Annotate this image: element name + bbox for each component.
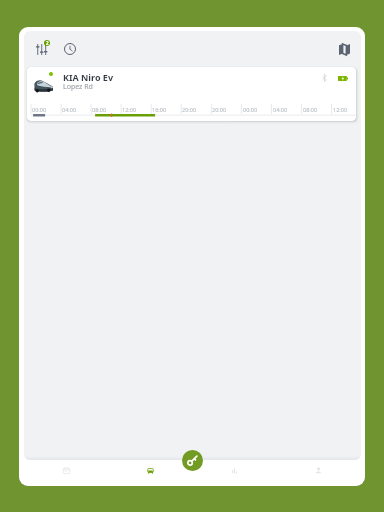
staticText: 00:00 [32, 106, 47, 113]
button[interactable]: Unlock vehicle [182, 450, 203, 471]
button[interactable]: Calendar [45, 459, 87, 485]
staticText: Lopez Rd [63, 82, 93, 92]
staticText: 04:00 [62, 106, 77, 113]
staticText: 04:00 [273, 106, 288, 113]
button[interactable]: Filters [35, 43, 47, 55]
staticText: 12:00 [333, 106, 348, 113]
staticText: 08:00 [92, 106, 107, 113]
button[interactable]: History [64, 43, 76, 55]
staticText: 20:00 [212, 106, 227, 113]
staticText: 20:00 [182, 106, 197, 113]
button[interactable]: Map [338, 43, 350, 55]
staticText: 08:00 [303, 106, 318, 113]
staticText: 12:00 [122, 106, 137, 113]
button[interactable]: Statistics [213, 459, 255, 485]
button[interactable]: KIA Niro Ev [27, 67, 356, 121]
button[interactable]: Vehicles [129, 459, 171, 485]
staticText: 00:00 [243, 106, 258, 113]
button[interactable]: Profile [297, 459, 339, 485]
staticText: 2 [46, 40, 49, 46]
staticText: 16:00 [152, 106, 167, 113]
staticText: KIA Niro Ev [63, 71, 114, 83]
